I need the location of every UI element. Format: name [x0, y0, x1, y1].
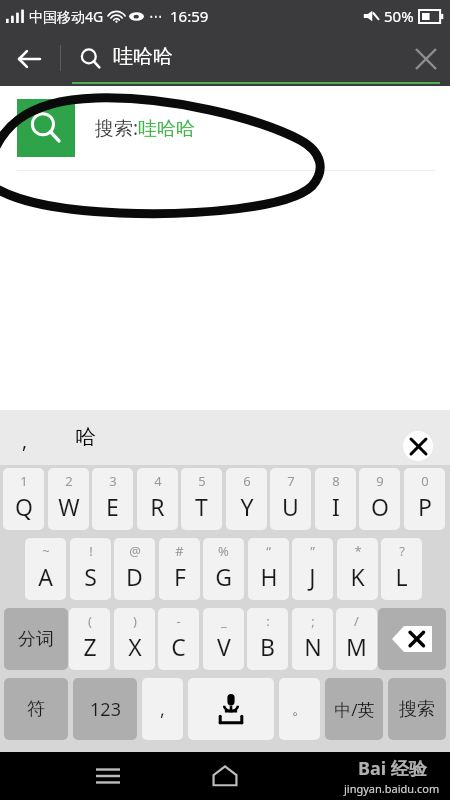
button[interactable]: #	[159, 538, 200, 600]
button[interactable]: “	[248, 538, 289, 600]
staticText: 1	[20, 472, 28, 490]
button[interactable]: Close candidates	[403, 431, 433, 461]
staticText: W	[58, 491, 80, 522]
staticText: 搜索:哇哈哈	[95, 115, 196, 141]
button[interactable]: !	[70, 538, 111, 600]
staticText: /	[354, 612, 359, 630]
button[interactable]: 分词	[4, 608, 68, 670]
button[interactable]: )	[114, 608, 155, 670]
staticText: -	[176, 612, 181, 630]
staticText: )	[133, 612, 137, 630]
staticText: 符	[27, 698, 45, 721]
staticText: ?	[399, 542, 405, 560]
staticText: “	[266, 542, 271, 560]
staticText: F	[174, 561, 186, 592]
staticText: C	[171, 631, 186, 662]
staticText: E	[106, 491, 119, 522]
button[interactable]: 2	[48, 468, 89, 530]
staticText: 50%	[384, 6, 414, 26]
button[interactable]: 中/英	[325, 678, 383, 740]
staticText: A	[38, 561, 53, 592]
button[interactable]: 哈	[75, 424, 96, 450]
button[interactable]: 4	[137, 468, 178, 530]
button[interactable]: -	[158, 608, 199, 670]
staticText: I	[332, 491, 340, 522]
button[interactable]: 6	[226, 468, 267, 530]
staticText: O	[371, 491, 389, 522]
staticText: ,	[160, 697, 165, 722]
staticText: 8	[332, 472, 340, 490]
staticText: jingyan.baidu.com	[344, 781, 440, 796]
button[interactable]: 。	[279, 678, 320, 740]
staticText: *	[354, 542, 362, 560]
button[interactable]: Back	[0, 32, 58, 86]
staticText: ⋯	[149, 8, 163, 24]
staticText: K	[350, 561, 365, 592]
staticText: H	[260, 561, 278, 592]
staticText: 0	[421, 472, 429, 490]
staticText: 中/英	[334, 698, 375, 721]
button[interactable]: Backspace	[378, 608, 446, 670]
staticText: _	[221, 612, 227, 630]
button[interactable]: /	[336, 608, 377, 670]
staticText: B	[260, 631, 275, 662]
staticText: Q	[15, 491, 33, 522]
button[interactable]: 0	[404, 468, 445, 530]
staticText: J	[309, 561, 316, 592]
button[interactable]: Home	[195, 752, 255, 800]
staticText: ”	[310, 542, 315, 560]
staticText: 7	[287, 472, 295, 490]
button[interactable]: ,	[142, 678, 183, 740]
button[interactable]: ~	[25, 538, 66, 600]
button[interactable]: @	[114, 538, 155, 600]
button[interactable]: 123	[73, 678, 137, 740]
button[interactable]: 7	[270, 468, 311, 530]
staticText: 16:59	[170, 6, 209, 26]
button[interactable]: Menu	[78, 752, 138, 800]
staticText: P	[418, 491, 432, 522]
button[interactable]: *	[337, 538, 378, 600]
staticText: 2	[65, 472, 73, 490]
staticText: U	[282, 491, 299, 522]
staticText: ~	[42, 542, 50, 560]
button[interactable]: _	[203, 608, 244, 670]
button[interactable]: 符	[4, 678, 68, 740]
button[interactable]: 5	[181, 468, 222, 530]
button[interactable]: 搜索	[388, 678, 446, 740]
button[interactable]: (	[69, 608, 110, 670]
staticText: 9	[376, 472, 384, 490]
button[interactable]: 3	[92, 468, 133, 530]
staticText: V	[217, 631, 231, 662]
staticText: G	[215, 561, 232, 592]
staticText: 。	[292, 700, 307, 719]
button[interactable]: ”	[292, 538, 333, 600]
button[interactable]: Clear	[402, 34, 450, 84]
staticText: 4	[154, 472, 162, 490]
staticText: :	[266, 612, 270, 630]
button[interactable]: %	[203, 538, 244, 600]
staticText: R	[150, 491, 165, 522]
staticText: 3	[109, 472, 117, 490]
button[interactable]: Space	[188, 678, 274, 740]
staticText: @	[129, 542, 141, 560]
button[interactable]: 8	[315, 468, 356, 530]
staticText: X	[128, 631, 142, 662]
button[interactable]: 9	[359, 468, 400, 530]
staticText: D	[126, 561, 143, 592]
button[interactable]: ,	[22, 428, 28, 454]
button[interactable]: 1	[3, 468, 44, 530]
staticText: !	[89, 542, 93, 560]
staticText: Z	[83, 631, 97, 662]
staticText: (	[88, 612, 92, 630]
staticText: 5	[198, 472, 206, 490]
button[interactable]: ;	[292, 608, 333, 670]
staticText: 中国移动4G	[29, 7, 104, 26]
staticText: 搜索	[399, 698, 435, 721]
button[interactable]: ?	[381, 538, 422, 600]
staticText: T	[195, 491, 208, 522]
button[interactable]: 搜索:哇哈哈	[0, 86, 450, 170]
staticText: 123	[90, 697, 121, 722]
staticText: #	[175, 542, 184, 560]
staticText: L	[395, 561, 408, 592]
button[interactable]: :	[247, 608, 288, 670]
